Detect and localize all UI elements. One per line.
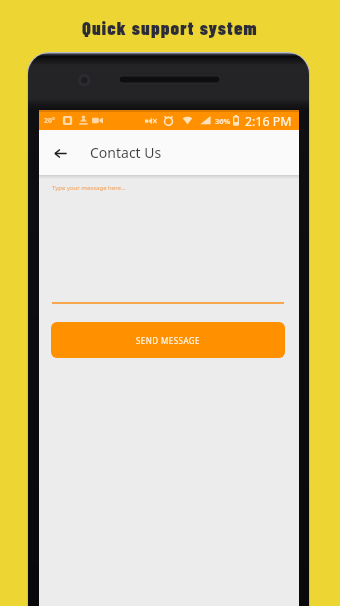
button[interactable]: Back [44,137,76,169]
staticText: Quick support system [82,16,258,38]
staticText: Contact Us [90,143,162,162]
staticText: 2:16 PM [245,113,292,130]
staticText: 36% [215,116,231,126]
staticText: Type your message here... [52,184,126,192]
button[interactable]: SEND MESSAGE [51,322,285,358]
staticText: 20° [44,116,55,126]
staticText: SEND MESSAGE [136,335,200,346]
